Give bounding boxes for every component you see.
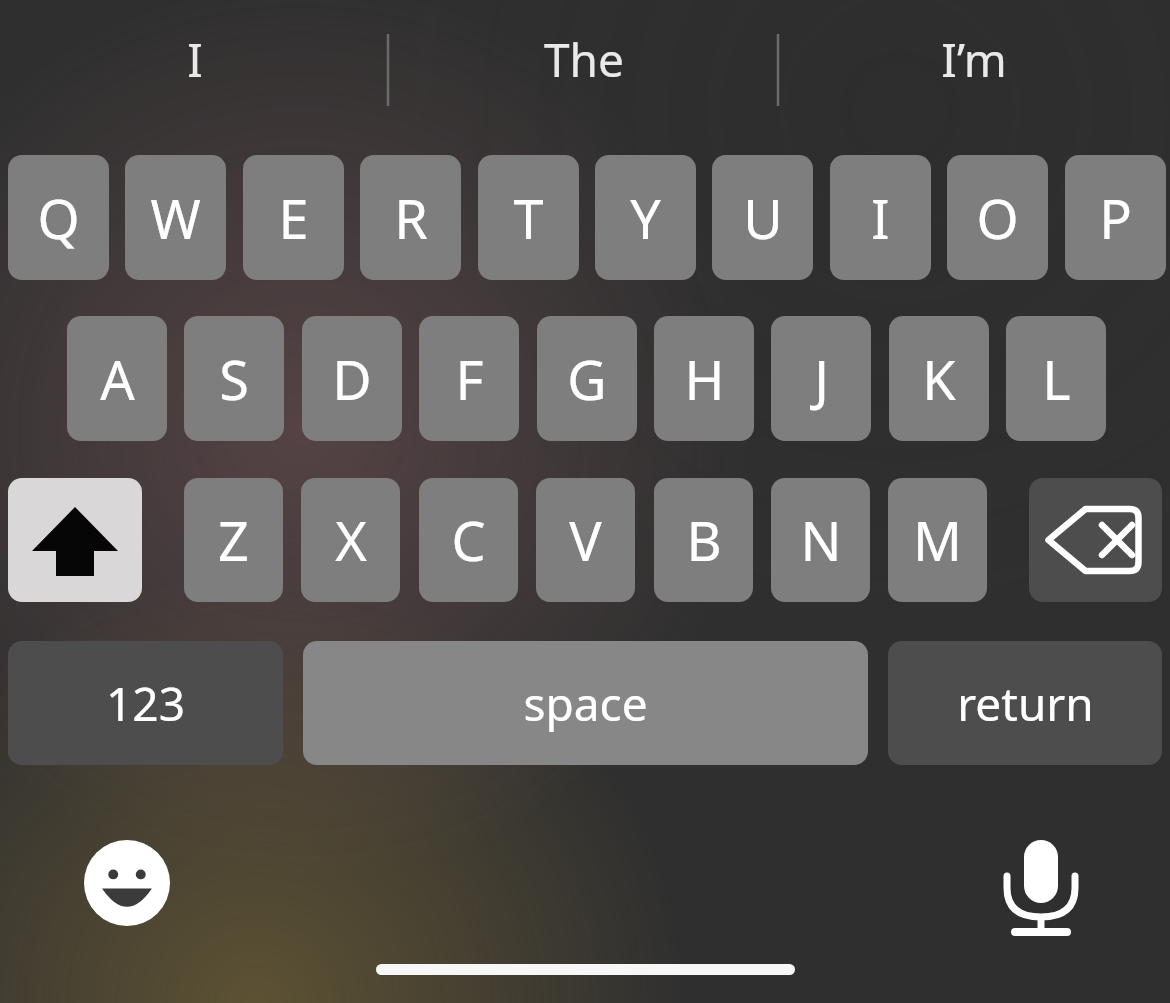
button[interactable]: Shift: [8, 478, 142, 602]
button[interactable]: Emoji: [84, 840, 170, 926]
staticText: E: [278, 181, 309, 255]
staticText: S: [219, 342, 249, 416]
button[interactable]: Backspace: [1029, 478, 1162, 602]
staticText: G: [567, 342, 607, 416]
button[interactable]: P: [1065, 155, 1166, 280]
button[interactable]: Z: [184, 478, 283, 602]
staticText: R: [394, 181, 428, 255]
button[interactable]: I: [0, 0, 389, 118]
button[interactable]: I’m: [778, 0, 1170, 118]
button[interactable]: 123: [8, 641, 283, 765]
staticText: A: [100, 342, 135, 416]
staticText: Z: [218, 503, 249, 577]
staticText: L: [1042, 342, 1071, 416]
button[interactable]: M: [888, 478, 987, 602]
button[interactable]: Q: [8, 155, 109, 280]
button[interactable]: S: [184, 316, 284, 441]
button[interactable]: V: [536, 478, 635, 602]
button[interactable]: F: [419, 316, 519, 441]
staticText: The: [544, 28, 624, 91]
staticText: Y: [630, 181, 661, 255]
staticText: C: [451, 503, 486, 577]
button[interactable]: O: [947, 155, 1048, 280]
button[interactable]: A: [67, 316, 167, 441]
staticText: I: [871, 181, 890, 255]
button[interactable]: space: [303, 641, 868, 765]
staticText: B: [686, 503, 722, 577]
staticText: 123: [106, 672, 185, 735]
button[interactable]: N: [771, 478, 870, 602]
button[interactable]: G: [537, 316, 637, 441]
staticText: Q: [37, 181, 80, 255]
staticText: M: [913, 503, 962, 577]
staticText: J: [814, 342, 829, 416]
button[interactable]: X: [301, 478, 400, 602]
button[interactable]: U: [712, 155, 813, 280]
staticText: I’m: [941, 28, 1007, 91]
staticText: N: [800, 503, 842, 577]
staticText: O: [976, 181, 1019, 255]
staticText: P: [1099, 181, 1132, 255]
staticText: D: [332, 342, 372, 416]
button[interactable]: return: [888, 641, 1162, 765]
staticText: T: [513, 181, 544, 255]
staticText: K: [922, 342, 956, 416]
button[interactable]: I: [830, 155, 931, 280]
button[interactable]: T: [478, 155, 579, 280]
staticText: V: [569, 503, 602, 577]
staticText: F: [455, 342, 484, 416]
button[interactable]: L: [1006, 316, 1106, 441]
staticText: H: [684, 342, 725, 416]
button[interactable]: H: [654, 316, 754, 441]
button[interactable]: J: [771, 316, 871, 441]
button[interactable]: Y: [595, 155, 696, 280]
staticText: U: [743, 181, 783, 255]
staticText: X: [335, 503, 367, 577]
button[interactable]: W: [125, 155, 226, 280]
staticText: I: [187, 28, 203, 91]
button[interactable]: K: [889, 316, 989, 441]
staticText: W: [150, 181, 201, 255]
button[interactable]: B: [654, 478, 753, 602]
staticText: space: [523, 672, 648, 735]
staticText: return: [957, 672, 1094, 735]
button[interactable]: The: [389, 0, 778, 118]
button[interactable]: Dictation: [998, 836, 1084, 932]
button[interactable]: R: [360, 155, 461, 280]
button[interactable]: E: [243, 155, 344, 280]
button[interactable]: D: [302, 316, 402, 441]
button[interactable]: C: [419, 478, 518, 602]
